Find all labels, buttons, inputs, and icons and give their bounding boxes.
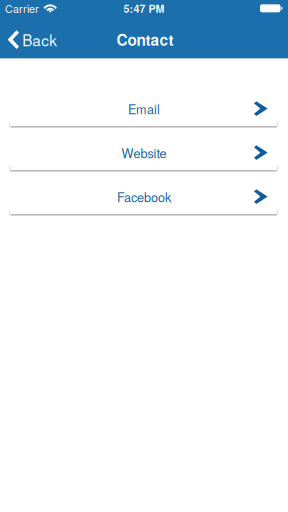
button[interactable]: Facebook bbox=[0, 172, 288, 216]
staticText: 5:47 PM bbox=[123, 1, 164, 16]
button[interactable]: Back bbox=[0, 17, 67, 59]
staticText: Back bbox=[22, 29, 57, 51]
staticText: Email bbox=[128, 100, 160, 118]
staticText: Facebook bbox=[117, 188, 171, 206]
staticText: Carrier bbox=[5, 1, 39, 16]
button[interactable]: Email bbox=[0, 84, 288, 128]
staticText: Contact bbox=[116, 29, 173, 51]
button[interactable]: Website bbox=[0, 128, 288, 172]
staticText: Website bbox=[121, 144, 166, 162]
